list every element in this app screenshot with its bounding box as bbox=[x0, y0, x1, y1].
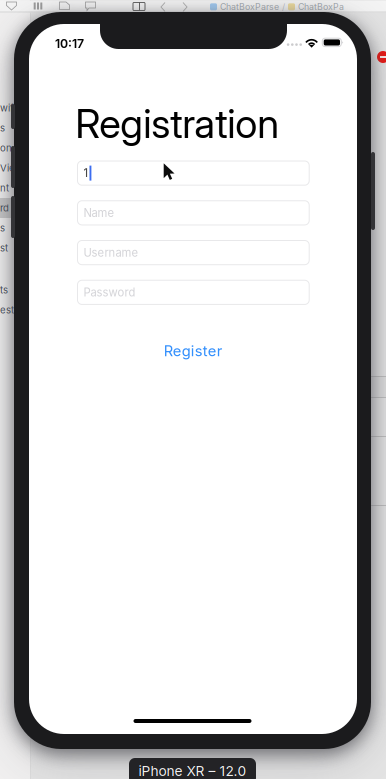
staticText: ChatBoxParse bbox=[220, 1, 279, 12]
staticText: iPhone XR – 12.0 bbox=[138, 763, 246, 779]
staticText: ChatBoxPa bbox=[298, 1, 344, 12]
staticText: Registration bbox=[75, 100, 279, 147]
staticText: 10:17 bbox=[55, 36, 84, 51]
staticText: s bbox=[0, 222, 5, 234]
staticText: s bbox=[0, 122, 5, 134]
staticText: ts bbox=[0, 284, 8, 296]
staticText: rd bbox=[0, 202, 9, 214]
staticText: / bbox=[282, 1, 285, 12]
staticText: 1 bbox=[83, 166, 88, 180]
staticText: st bbox=[0, 242, 8, 254]
staticText: nt bbox=[0, 182, 9, 194]
button[interactable]: Register bbox=[77, 340, 309, 362]
staticText: Register bbox=[164, 342, 223, 360]
staticText: est bbox=[0, 304, 14, 316]
staticText: Password bbox=[83, 286, 135, 299]
staticText: Vie bbox=[0, 162, 15, 174]
staticText: Username bbox=[83, 246, 138, 259]
staticText: Name bbox=[83, 206, 114, 220]
staticText: on bbox=[0, 142, 12, 154]
staticText: wif bbox=[0, 102, 14, 114]
